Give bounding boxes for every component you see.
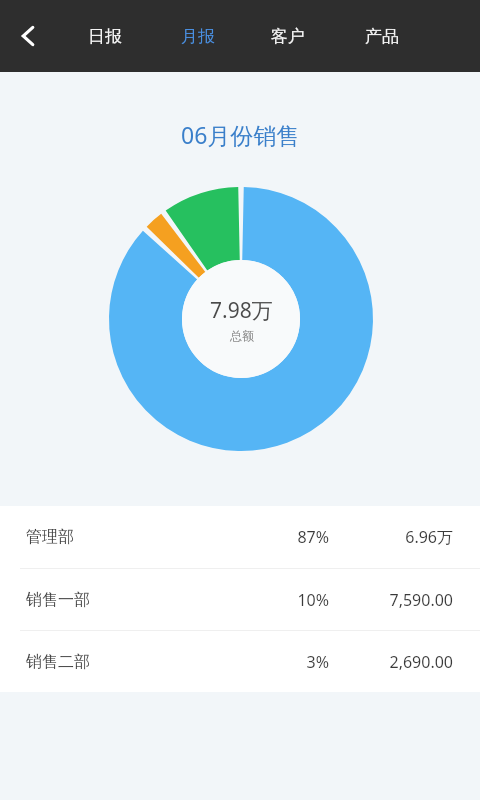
staticText: 销售一部	[26, 590, 90, 610]
staticText: 7.98万	[210, 296, 273, 325]
button[interactable]: 销售二部	[0, 631, 480, 692]
staticText: 客户	[271, 26, 305, 47]
button[interactable]: 日报	[75, 14, 135, 58]
staticText: 产品	[365, 26, 399, 47]
staticText: 2,690.00	[389, 651, 453, 673]
staticText: 总额	[230, 328, 254, 343]
staticText: 3%	[306, 651, 329, 673]
staticText: 月报	[181, 26, 215, 47]
staticText: 6.96万	[405, 526, 453, 548]
staticText: 日报	[88, 26, 122, 47]
button[interactable]: Back	[0, 8, 56, 64]
button[interactable]: 销售一部	[0, 569, 480, 630]
button[interactable]: 客户	[258, 14, 318, 58]
button[interactable]: 管理部	[0, 506, 480, 568]
button[interactable]: 月报	[168, 14, 228, 58]
staticText: 10%	[297, 589, 329, 611]
staticText: 7,590.00	[389, 589, 453, 611]
button[interactable]: 产品	[352, 14, 412, 58]
staticText: 06月份销售	[181, 119, 300, 150]
staticText: 87%	[297, 526, 329, 548]
staticText: 销售二部	[26, 652, 90, 672]
staticText: 管理部	[26, 527, 74, 547]
